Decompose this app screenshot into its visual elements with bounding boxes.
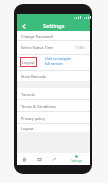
button[interactable]: Settings — [62, 153, 90, 165]
staticText: Privacy policy — [21, 116, 45, 121]
button[interactable]: Store Barcode — [17, 71, 90, 81]
button[interactable]: Logout — [20, 57, 37, 67]
staticText: Logout — [21, 126, 34, 131]
staticText: full version — [45, 61, 63, 66]
button[interactable]: Logout — [17, 124, 90, 132]
button[interactable]: Tutorial — [17, 88, 90, 100]
button[interactable]: Privacy policy — [17, 112, 90, 124]
staticText: Logout — [22, 60, 35, 65]
staticText: Settings — [43, 22, 65, 29]
staticText: Terms & Conditions — [21, 104, 56, 109]
staticText: Store Barcode — [21, 74, 47, 79]
button[interactable]: Stats — [47, 153, 62, 165]
button[interactable]: Back — [19, 22, 27, 30]
button[interactable]: Select Status Time — [17, 41, 90, 54]
staticText: Change Password — [21, 34, 53, 39]
button[interactable]: Stores — [32, 153, 47, 165]
staticText: Click to navigate — [45, 56, 72, 61]
staticText: Tutorial — [21, 92, 35, 97]
button[interactable]: Change Password — [17, 31, 90, 41]
staticText: Settings — [71, 159, 82, 163]
button[interactable]: Home — [17, 153, 32, 165]
staticText: Select Status Time — [21, 45, 54, 50]
staticText: 10 Min — [75, 46, 86, 50]
button[interactable]: Terms & Conditions — [17, 100, 90, 112]
